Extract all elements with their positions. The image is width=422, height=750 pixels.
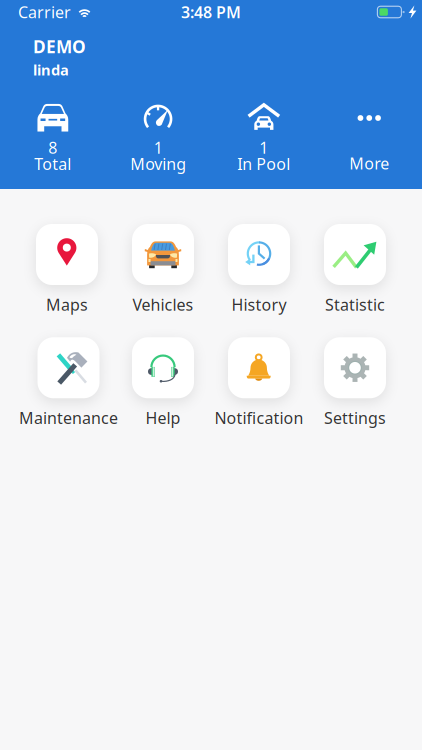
button[interactable]: 1 (105, 103, 211, 164)
button[interactable]: Vehicles (115, 224, 211, 315)
button[interactable]: Notification (211, 337, 307, 428)
button[interactable]: Maintenance (19, 337, 115, 428)
staticText: Settings (324, 407, 386, 428)
button[interactable]: Help (115, 337, 211, 428)
button[interactable]: History (211, 224, 307, 315)
staticText: Maintenance (19, 407, 118, 428)
button[interactable]: Settings (307, 337, 403, 428)
staticText: Statistic (325, 294, 385, 315)
staticText: Vehicles (132, 294, 193, 315)
button[interactable]: More (316, 103, 422, 164)
staticText: DEMO (33, 35, 86, 58)
staticText: 3:48 PM (181, 1, 241, 23)
staticText: History (231, 294, 286, 315)
button[interactable]: 8 (0, 103, 105, 164)
staticText: 1 (154, 137, 163, 158)
staticText: Moving (130, 153, 186, 174)
staticText: Total (34, 153, 71, 174)
staticText: In Pool (237, 153, 290, 174)
staticText: Notification (214, 407, 303, 428)
button[interactable]: Statistic (307, 224, 403, 315)
staticText: 8 (48, 137, 57, 158)
staticText: Maps (46, 294, 88, 315)
staticText: 1 (259, 137, 268, 158)
button[interactable]: Maps (19, 224, 115, 315)
staticText: Carrier (18, 1, 71, 23)
staticText: Help (145, 407, 180, 428)
button[interactable]: 1 (211, 103, 316, 164)
staticText: More (349, 153, 389, 174)
staticText: linda (33, 60, 69, 79)
